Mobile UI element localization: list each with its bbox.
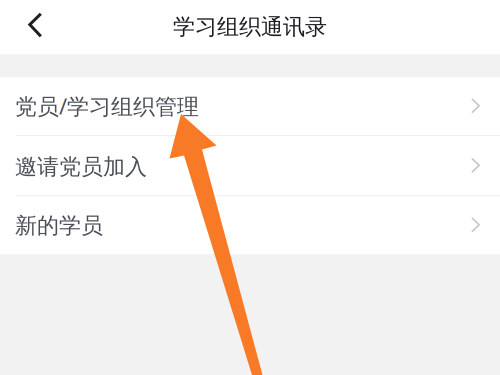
staticText: 党员/学习组织管理 [15, 91, 199, 121]
button[interactable]: 党员/学习组织管理 [0, 77, 500, 136]
button[interactable]: 新的学员 [0, 196, 500, 254]
button[interactable]: 邀请党员加入 [0, 136, 500, 196]
staticText: 新的学员 [15, 212, 103, 240]
button[interactable]: Back [0, 6, 57, 48]
staticText: 邀请党员加入 [15, 153, 147, 181]
staticText: 学习组织通讯录 [173, 13, 327, 41]
